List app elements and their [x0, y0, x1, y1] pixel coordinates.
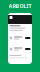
- staticText: ARBOLIT: [8, 2, 31, 10]
